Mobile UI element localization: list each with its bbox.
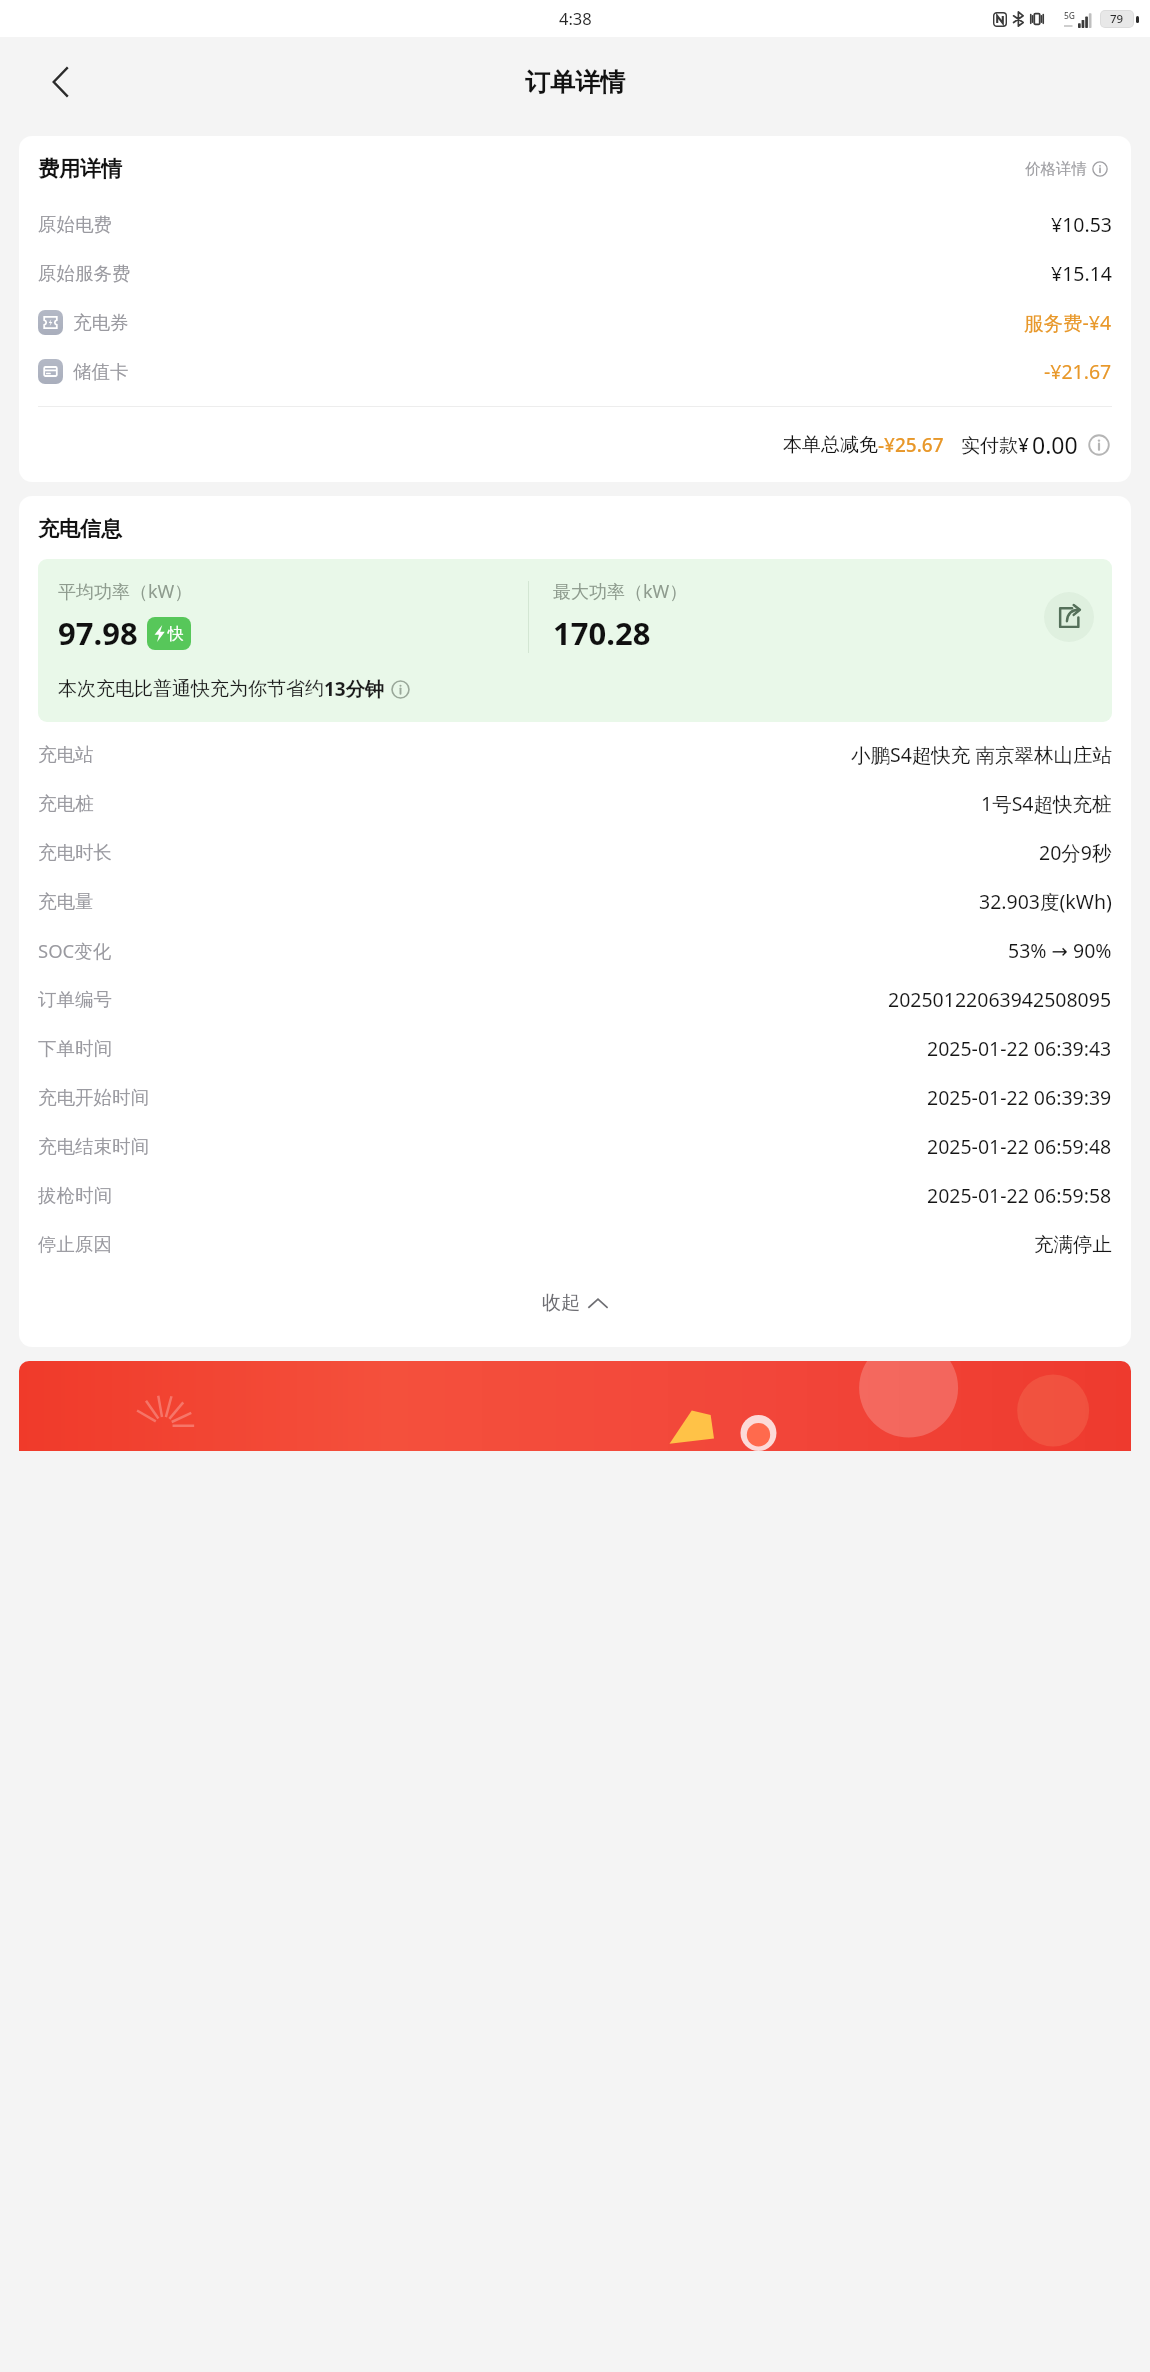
button[interactable]: 收起	[526, 1285, 624, 1321]
staticText: 下单时间	[38, 1037, 112, 1060]
staticText: 停止原因	[38, 1233, 112, 1256]
staticText: 13分钟	[324, 676, 384, 702]
staticText: 5G	[1064, 10, 1076, 22]
staticText: ¥15.14	[1051, 260, 1112, 287]
staticText: 170.28	[553, 612, 651, 654]
staticText: 2025-01-22 06:39:39	[927, 1084, 1112, 1111]
staticText: 充电结束时间	[38, 1135, 149, 1158]
staticText: 充电时长	[38, 841, 112, 864]
staticText: 原始电费	[38, 213, 112, 236]
button[interactable]: Payment info	[1086, 432, 1112, 458]
staticText: 最大功率（kW）	[553, 579, 688, 604]
staticText: 平均功率（kW）	[58, 579, 193, 604]
staticText: 32.903度(kWh)	[979, 888, 1112, 915]
staticText: ¥10.53	[1051, 211, 1112, 238]
staticText: 服务费-¥4	[1024, 309, 1112, 336]
staticText: 实付款¥	[961, 432, 1029, 458]
staticText: 79	[1110, 11, 1124, 27]
staticText: 价格详情	[1025, 159, 1087, 179]
staticText: 1号S4超快充桩	[981, 790, 1112, 817]
staticText: 费用详情	[38, 156, 122, 182]
staticText: 4:38	[559, 7, 592, 29]
button[interactable]: Back	[36, 58, 84, 106]
staticText: SOC变化	[38, 938, 112, 963]
staticText: 充电开始时间	[38, 1086, 149, 1109]
staticText: 充电站	[38, 743, 94, 766]
button[interactable]	[19, 1361, 1131, 1451]
staticText: 充满停止	[1034, 1232, 1112, 1257]
staticText: 53% → 90%	[1008, 937, 1112, 964]
staticText: 储值卡	[73, 360, 129, 383]
staticText: 订单详情	[525, 67, 625, 98]
staticText: 20250122063942508095	[888, 986, 1112, 1013]
staticText: 收起	[542, 1291, 580, 1315]
staticText: 小鹏S4超快充 南京翠林山庄站	[851, 741, 1112, 768]
staticText: 充电券	[73, 311, 129, 334]
button[interactable]: Share	[1044, 592, 1094, 642]
button[interactable]: 价格详情	[1021, 155, 1112, 183]
staticText: 20分9秒	[1039, 839, 1112, 866]
staticText: 拔枪时间	[38, 1184, 112, 1207]
staticText: 本单总减免	[783, 433, 878, 457]
staticText: 2025-01-22 06:59:58	[927, 1182, 1112, 1209]
staticText: 原始服务费	[38, 262, 131, 285]
staticText: -¥25.67	[878, 432, 944, 458]
staticText: 充电桩	[38, 792, 94, 815]
staticText: 快	[168, 624, 184, 644]
staticText: -¥21.67	[1044, 358, 1112, 385]
staticText: 97.98	[58, 612, 138, 654]
staticText: 充电信息	[38, 516, 122, 542]
staticText: 2025-01-22 06:39:43	[927, 1035, 1112, 1062]
staticText: 本次充电比普通快充为你节省约	[58, 677, 324, 701]
staticText: 2025-01-22 06:59:48	[927, 1133, 1112, 1160]
staticText: 订单编号	[38, 988, 112, 1011]
staticText: 充电量	[38, 890, 94, 913]
staticText: 0.00	[1032, 429, 1078, 460]
